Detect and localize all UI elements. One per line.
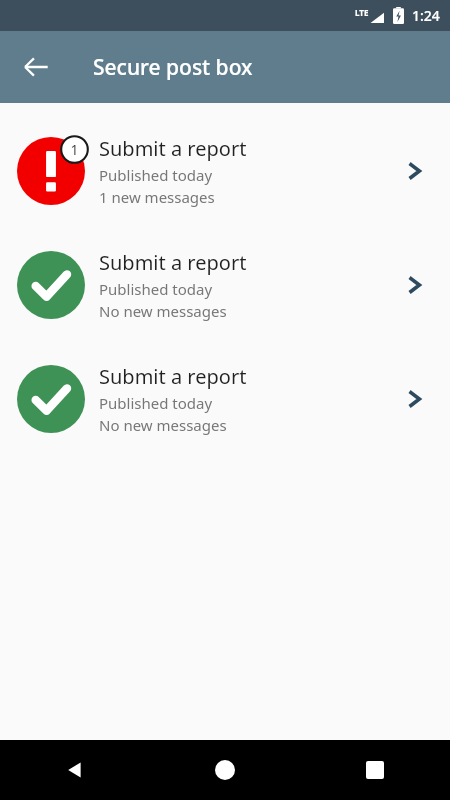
staticText: Submit a report [99, 249, 247, 276]
staticText: Submit a report [99, 363, 247, 390]
staticText: Published today [99, 393, 213, 413]
button[interactable]: Submit a report [0, 342, 450, 456]
button[interactable]: Submit a report [0, 228, 450, 342]
staticText: No new messages [99, 415, 227, 435]
button[interactable]: 1 [0, 114, 450, 228]
staticText: Submit a report [99, 135, 247, 162]
button[interactable]: Home [150, 740, 300, 800]
staticText: 1:24 [412, 6, 440, 25]
staticText: 1 [70, 140, 79, 159]
button[interactable]: Back [0, 740, 150, 800]
staticText: Published today [99, 279, 213, 299]
button[interactable]: Back [10, 41, 62, 93]
staticText: LTE [355, 7, 369, 18]
staticText: Published today [99, 165, 213, 185]
staticText: 1 new messages [99, 187, 215, 207]
staticText: No new messages [99, 301, 227, 321]
staticText: Secure post box [93, 53, 253, 82]
button[interactable]: Recent apps [300, 740, 450, 800]
